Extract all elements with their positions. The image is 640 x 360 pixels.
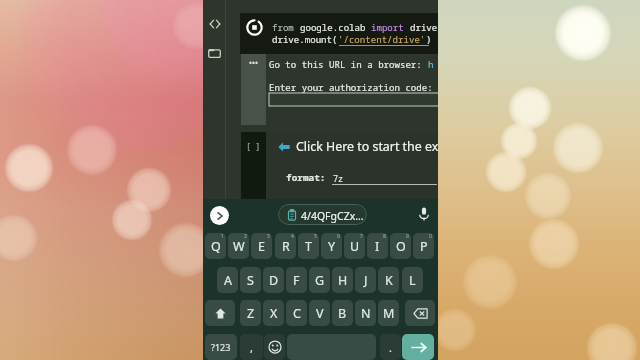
button[interactable]: Start here [278,141,290,153]
button[interactable]: I [367,233,388,259]
staticText: Y [328,238,336,255]
button[interactable]: E [251,233,272,259]
staticText: P [420,238,428,255]
staticText: I [375,238,380,255]
staticText: O [396,238,406,255]
button[interactable]: H [332,267,353,293]
button[interactable]: Files [207,46,222,61]
button[interactable]: Voice input [417,207,431,221]
staticText: Q [211,238,221,255]
button[interactable]: M [378,300,399,326]
button[interactable]: J [355,267,376,293]
button[interactable]: , [240,334,263,360]
staticText: from [272,21,300,33]
button[interactable]: Run cell [246,19,263,36]
staticText: . [389,340,392,355]
staticText: format: [286,171,326,184]
button[interactable]: S [240,267,261,293]
button[interactable]: X [263,300,284,326]
staticText: X [270,305,278,322]
staticText: 7 [360,233,363,240]
staticText: E [258,238,265,255]
staticText: C [293,305,301,322]
staticText: Click Here to start the ex [296,138,438,155]
button[interactable]: F [286,267,307,293]
staticText: R [282,238,290,255]
button[interactable]: More output options [241,54,266,125]
staticText: 6 [337,233,340,240]
button[interactable]: P [413,233,434,259]
staticText: 3 [267,233,270,240]
staticText: W [233,238,245,255]
button[interactable]: Q [205,233,226,259]
button[interactable]: L [402,267,423,293]
button[interactable]: Z [240,300,261,326]
button[interactable]: C [286,300,307,326]
button[interactable]: Run cell [241,132,266,199]
staticText: Go to this URL in a browser: [269,58,428,70]
button[interactable]: U [344,233,365,259]
staticText: N [361,305,371,322]
staticText: import [371,21,410,33]
staticText: U [350,238,360,255]
button[interactable]: B [332,300,353,326]
staticText: 4 [291,233,294,240]
staticText: 7z [333,173,344,184]
staticText: Z [247,305,255,322]
button[interactable] [269,93,438,106]
button[interactable]: A [217,267,238,293]
button[interactable]: Backspace [405,300,435,326]
button[interactable]: G [309,267,330,293]
staticText: F [293,272,300,289]
staticText: S [247,272,254,289]
staticText: J [364,272,368,289]
button[interactable]: W [228,233,249,259]
staticText: 4/4QFgCZx... [301,209,364,223]
button[interactable]: V [309,300,330,326]
staticText: '/content/drive' [338,33,426,45]
staticText: L [409,272,416,289]
staticText: [ ] [246,141,261,152]
button[interactable]: . [380,334,401,360]
staticText: drive [410,21,438,33]
staticText: drive.mount( [272,33,338,45]
staticText: 9 [406,233,409,240]
staticText: 2 [244,233,247,240]
staticText: ?123 [211,341,231,353]
staticText: B [338,305,347,322]
button[interactable]: O [390,233,411,259]
staticText: ••• [249,57,259,68]
button[interactable]: 4/4QFgCZx... [278,204,367,225]
button[interactable]: Show suggestions [210,206,229,225]
button[interactable]: T [298,233,319,259]
button[interactable]: Enter [402,334,434,360]
button[interactable]: N [355,300,376,326]
staticText: A [224,272,232,289]
button[interactable]: Click Here to start the ex [296,138,438,155]
staticText: ) [426,33,432,45]
button[interactable]: K [378,267,399,293]
staticText: google.colab [300,21,371,33]
staticText: T [305,238,312,255]
staticText: 1 [221,233,224,240]
staticText: G [315,272,325,289]
button[interactable]: D [263,267,284,293]
staticText: 8 [383,233,386,240]
staticText: 5 [314,233,317,240]
staticText: h [428,58,434,70]
staticText: Enter your authorization code: [269,81,433,93]
button[interactable]: Y [321,233,342,259]
staticText: H [338,272,348,289]
staticText: V [316,305,324,322]
staticText: 0 [429,233,432,240]
button[interactable]: R [275,233,296,259]
staticText: D [269,272,279,289]
button[interactable]: ?123 [205,334,237,360]
staticText: , [250,340,253,355]
staticText: M [383,305,395,322]
button[interactable]: Shift [205,300,235,326]
button[interactable]: Emoji [264,334,285,360]
button[interactable]: Code snippets [207,16,222,31]
staticText: K [385,272,393,289]
